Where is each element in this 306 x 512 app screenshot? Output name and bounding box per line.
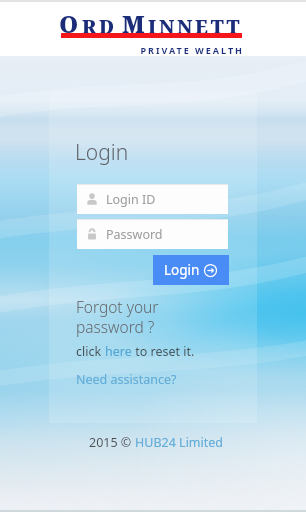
staticText: click bbox=[76, 343, 105, 360]
staticText: Forgot your password ? bbox=[76, 296, 159, 337]
button[interactable]: Need assistance? bbox=[76, 371, 177, 388]
button[interactable]: here bbox=[105, 343, 132, 360]
staticText: HUB24 Limited bbox=[135, 434, 224, 451]
staticText: 2015 © bbox=[89, 434, 135, 451]
button[interactable]: Login ID bbox=[77, 184, 228, 214]
staticText: PRIVATE WEALTH bbox=[58, 44, 244, 56]
button[interactable]: Login bbox=[153, 255, 229, 285]
staticText: M bbox=[122, 8, 148, 40]
staticText: INNETT bbox=[148, 14, 243, 40]
staticText: Need assistance? bbox=[76, 371, 177, 388]
button[interactable]: HUB24 Limited bbox=[135, 434, 224, 451]
staticText: Login bbox=[75, 138, 129, 167]
staticText: Login ID bbox=[106, 191, 156, 208]
staticText: RD bbox=[82, 14, 118, 40]
button[interactable]: Password bbox=[77, 219, 228, 249]
staticText: Login bbox=[164, 261, 200, 279]
staticText: to reset it. bbox=[132, 343, 195, 360]
staticText: Password bbox=[106, 226, 163, 243]
staticText: here bbox=[105, 343, 132, 360]
staticText: O bbox=[59, 8, 82, 40]
